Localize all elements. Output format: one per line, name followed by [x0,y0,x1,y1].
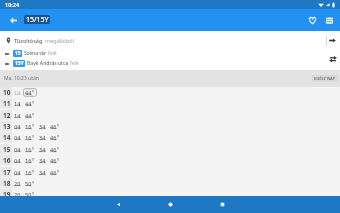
staticText: Y [32,157,35,162]
staticText: 16 [25,157,32,164]
button[interactable]: 13 [0,121,340,132]
staticText: Y [32,89,35,94]
staticText: Bayk András utca [27,60,69,67]
button[interactable]: Swap direction [326,52,339,65]
staticText: 14 [14,112,21,119]
button[interactable]: Favourite [303,11,321,29]
button[interactable]: 11 [0,98,340,109]
staticText: 44 [25,100,32,107]
button[interactable]: Calendar [320,11,338,29]
button[interactable]: 19 [0,189,340,200]
staticText: 14 [14,89,21,96]
button[interactable]: 15Y [0,58,300,69]
staticText: 10 [3,88,11,97]
staticText: Y [57,123,60,128]
staticText: 15 [15,50,21,57]
staticText: 10:24 [5,1,20,8]
staticText: Y [32,123,35,128]
staticText: Tűzoltóság [14,37,43,44]
staticText: 04 [14,146,21,153]
staticText: EGÉSZ NAP [314,76,336,81]
staticText: 50 [25,180,32,187]
staticText: Y [32,191,35,196]
staticText: Y [32,112,35,117]
button[interactable]: 18 [0,178,340,189]
button[interactable]: Home [158,196,182,213]
staticText: 12 [3,111,11,120]
staticText: 16 [3,156,11,165]
staticText: megállóból [45,37,75,44]
staticText: 44 [25,112,32,119]
button[interactable]: 14 [0,132,340,143]
staticText: Y [32,100,35,105]
staticText: 18 [3,179,11,188]
staticText: 50 [25,191,32,198]
staticText: 15/15Y [26,15,49,24]
staticText: Y [32,146,35,151]
staticText: Ma, 10:23 után [4,75,39,82]
button[interactable]: Open route [326,34,339,47]
staticText: 16 [25,146,32,153]
staticText: 14 [14,100,21,107]
staticText: 17 [3,168,11,177]
button[interactable]: 15 [0,48,300,59]
staticText: 34 [39,123,46,130]
staticText: 14 [3,133,11,142]
staticText: 44 [25,89,32,96]
button[interactable]: 12 [0,110,340,121]
staticText: Y [32,134,35,139]
staticText: 20 [14,191,21,198]
button[interactable]: 16 [0,155,340,166]
staticText: 04 [14,123,21,130]
staticText: Y [57,134,60,139]
staticText: 46 [50,146,57,153]
button[interactable]: 17 [0,167,340,178]
button[interactable]: Back [106,196,130,213]
staticText: 15 [3,145,11,154]
button[interactable]: EGÉSZ NAP [312,75,338,82]
staticText: felé [70,60,79,67]
staticText: felé [48,50,57,57]
staticText: 04 [14,134,21,141]
staticText: 16 [25,134,32,141]
staticText: 16 [25,169,32,176]
button[interactable]: Tűzoltóság [6,34,75,46]
staticText: 46 [50,157,57,164]
staticText: 11 [3,99,11,108]
staticText: 34 [39,146,46,153]
staticText: Y [32,180,35,185]
staticText: 16 [25,123,32,130]
button[interactable]: Recents [210,196,234,213]
staticText: 34 [39,157,46,164]
button[interactable]: 10 [0,87,340,98]
staticText: 46 [50,123,57,130]
staticText: Y [57,169,60,174]
staticText: Széna tér [24,50,47,57]
staticText: 19 [3,190,11,199]
button[interactable]: 15 [0,144,340,155]
staticText: 04 [14,169,21,176]
staticText: 04 [14,157,21,164]
staticText: Y [57,157,60,162]
staticText: 15Y [15,60,24,67]
staticText: 34 [39,134,46,141]
button[interactable]: Back [3,10,23,30]
staticText: 20 [14,180,21,187]
staticText: 46 [50,134,57,141]
staticText: 13 [3,122,11,131]
staticText: Y [57,146,60,151]
staticText: 34 [39,169,46,176]
staticText: Y [32,169,35,174]
staticText: 46 [50,169,57,176]
